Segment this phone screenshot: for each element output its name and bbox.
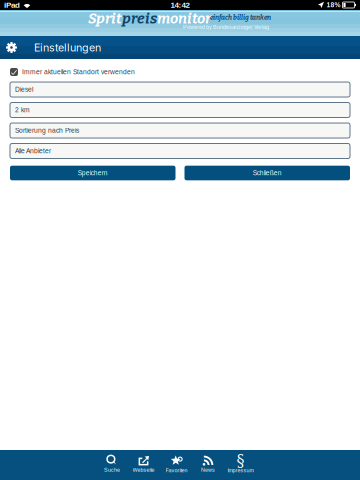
staticText: 14:42 [170,0,189,9]
button[interactable]: Diesel [10,82,350,97]
staticText: Speichern [78,169,108,177]
staticText: preis [122,10,157,27]
button[interactable]: 2 km [10,102,350,117]
staticText: News [201,467,215,473]
staticText: Powered by Bundesanzeiger Verlag [183,24,269,30]
staticText: 18% [326,1,340,9]
staticText: Diesel [15,86,33,93]
staticText: § [236,451,244,470]
button[interactable]: Sortierung nach Preis [10,123,350,138]
staticText: Sortierung nach Preis [15,127,79,134]
button[interactable]: Favoriten [160,450,192,480]
staticText: Suche [104,467,120,473]
staticText: Sprit [88,10,122,27]
button[interactable]: Immer aktuellen Standort verwenden [10,68,350,76]
staticText: Favoriten [165,467,187,473]
staticText: Webseite [132,467,154,473]
button[interactable]: Alle Anbieter [10,143,350,158]
button[interactable]: Suche [96,450,128,480]
staticText: Impressum [227,467,253,473]
staticText: monitor [157,10,211,27]
button[interactable]: Speichern [10,166,175,180]
staticText: iPad [4,0,20,9]
staticText: Alle Anbieter [15,147,51,155]
button[interactable]: § [224,450,256,480]
staticText: 2 km [15,106,30,114]
staticText: Einstellungen [34,41,101,54]
button[interactable]: Webseite [127,450,159,480]
staticText: Immer aktuellen Standort verwenden [22,68,135,76]
button[interactable]: Schließen [184,166,350,180]
button[interactable]: News [192,450,224,480]
staticText: einfach billig tanken [210,13,271,21]
staticText: Schließen [253,169,282,177]
